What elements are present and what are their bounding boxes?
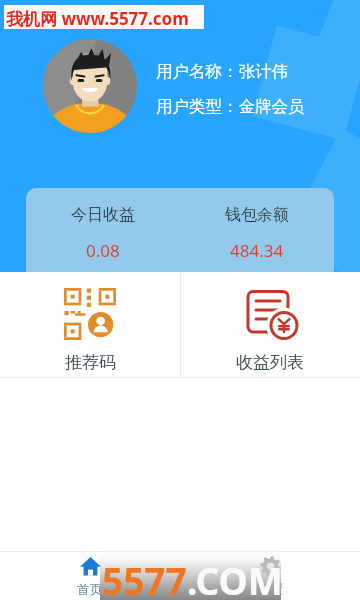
button[interactable]: 设置 bbox=[180, 552, 360, 600]
staticText: 推荐码 bbox=[65, 352, 116, 373]
button[interactable]: 今日收益 bbox=[26, 188, 180, 272]
button[interactable]: 推荐码 bbox=[0, 272, 180, 378]
staticText: 我机网 www.5577.com bbox=[6, 7, 189, 30]
button[interactable]: 钱包余额 bbox=[180, 188, 334, 272]
staticText: 今日收益 bbox=[71, 205, 135, 225]
button[interactable]: 头像 bbox=[43, 39, 137, 133]
staticText: 5577 bbox=[102, 555, 187, 600]
button[interactable]: 首页 bbox=[0, 552, 180, 600]
staticText: 收益列表 bbox=[236, 352, 304, 373]
staticText: 用户名称：张计伟 bbox=[156, 61, 288, 82]
staticText: 484.34 bbox=[230, 239, 284, 262]
staticText: 0.08 bbox=[86, 239, 120, 262]
staticText: 钱包余额 bbox=[225, 205, 289, 225]
button[interactable]: 收益列表 bbox=[180, 272, 360, 378]
staticText: 设置 bbox=[257, 581, 283, 597]
staticText: 首页 bbox=[77, 581, 103, 597]
staticText: 用户类型：金牌会员 bbox=[156, 96, 305, 117]
staticText: .COM bbox=[187, 555, 283, 600]
